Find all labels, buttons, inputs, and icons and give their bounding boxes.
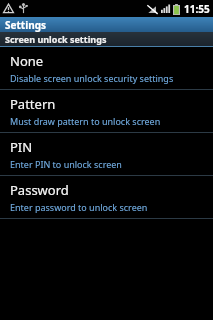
staticText: 11:55 [184,2,210,16]
button[interactable]: None [0,47,213,89]
staticText: Pattern [10,95,56,113]
button[interactable]: Password [0,176,213,218]
staticText: None [10,52,44,70]
staticText: Enter password to unlock screen [10,201,148,213]
staticText: Password [10,181,69,199]
staticText: Settings [5,18,46,32]
staticText: PIN [10,138,33,156]
staticText: Enter PIN to unlock screen [10,158,122,170]
staticText: Disable screen unlock security settings [10,72,174,84]
button[interactable]: PIN [0,133,213,175]
button[interactable]: Pattern [0,90,213,132]
staticText: Must draw pattern to unlock screen [10,115,161,127]
staticText: Screen unlock settings [5,33,107,45]
